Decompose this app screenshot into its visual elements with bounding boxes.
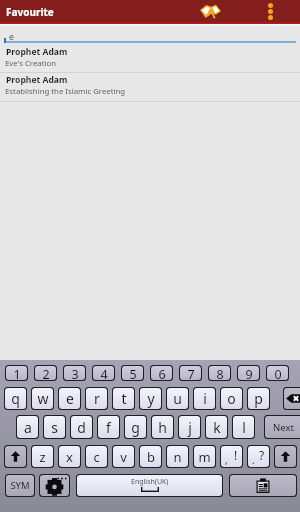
button[interactable]: n xyxy=(167,446,188,467)
staticText: Next xyxy=(273,421,294,434)
button[interactable]: Shift xyxy=(275,446,296,467)
button[interactable]: o xyxy=(221,388,242,409)
staticText: 8 xyxy=(216,366,224,380)
staticText: ? xyxy=(259,447,265,463)
button[interactable]: Prophet Adam xyxy=(0,73,300,102)
staticText: j xyxy=(188,418,192,437)
button[interactable]: 7 xyxy=(180,366,201,380)
staticText: Establishing the Islamic Greeting xyxy=(5,86,126,97)
button[interactable]: r xyxy=(86,388,107,409)
button[interactable]: Prophet Adam xyxy=(0,45,300,73)
button[interactable]: z xyxy=(32,446,53,467)
staticText: 0 xyxy=(274,366,282,380)
button[interactable]: e xyxy=(59,388,80,409)
button[interactable]: 3 xyxy=(64,366,85,380)
button[interactable]: u xyxy=(167,388,188,409)
staticText: English(UK) xyxy=(131,477,169,487)
button[interactable]: Open book xyxy=(193,0,227,23)
staticText: i xyxy=(203,389,207,408)
staticText: 9 xyxy=(245,366,253,380)
button[interactable]: 2 xyxy=(35,366,56,380)
staticText: Prophet Adam xyxy=(6,74,68,86)
button[interactable]: m xyxy=(194,446,215,467)
staticText: v xyxy=(120,448,127,466)
staticText: m xyxy=(198,448,211,466)
staticText: t xyxy=(121,389,127,408)
button[interactable]: d xyxy=(71,416,92,438)
staticText: 2 xyxy=(42,366,50,380)
button[interactable]: 1 xyxy=(6,366,27,380)
staticText: , xyxy=(225,453,228,467)
staticText: k xyxy=(213,418,221,437)
staticText: z xyxy=(39,448,46,466)
staticText: e xyxy=(9,30,15,42)
staticText: r xyxy=(94,389,100,408)
button[interactable]: j xyxy=(179,416,200,438)
staticText: SYM xyxy=(10,479,30,492)
button[interactable]: t xyxy=(113,388,134,409)
staticText: 6 xyxy=(158,366,166,380)
button[interactable]: 0 xyxy=(267,366,288,380)
button[interactable]: f xyxy=(98,416,119,438)
staticText: 1 xyxy=(13,366,21,380)
staticText: f xyxy=(106,418,111,437)
staticText: p xyxy=(254,389,263,408)
button[interactable]: 4 xyxy=(93,366,114,380)
button[interactable]: a xyxy=(17,416,38,438)
button[interactable]: Backspace xyxy=(284,388,300,409)
button[interactable]: v xyxy=(113,446,134,467)
button[interactable]: l xyxy=(233,416,254,438)
button[interactable]: k xyxy=(206,416,227,438)
button[interactable]: 6 xyxy=(151,366,172,380)
button[interactable]: q xyxy=(5,388,26,409)
staticText: 4 xyxy=(100,366,108,380)
staticText: l xyxy=(242,418,246,437)
button[interactable]: ? xyxy=(248,446,269,467)
staticText: d xyxy=(77,418,86,437)
staticText: g xyxy=(131,418,140,437)
button[interactable]: Keyboard settings xyxy=(40,475,69,496)
button[interactable]: SYM xyxy=(6,475,34,496)
button[interactable]: More options xyxy=(256,0,284,23)
staticText: 5 xyxy=(129,366,137,380)
staticText: u xyxy=(173,389,182,408)
button[interactable]: 5 xyxy=(122,366,143,380)
staticText: 7 xyxy=(187,366,195,380)
staticText: s xyxy=(51,418,58,437)
staticText: x xyxy=(66,448,73,466)
button[interactable]: 8 xyxy=(209,366,230,380)
staticText: 3 xyxy=(71,366,79,380)
button[interactable]: Next xyxy=(265,416,300,438)
button[interactable]: p xyxy=(248,388,269,409)
button[interactable]: ! xyxy=(221,446,242,467)
button[interactable]: w xyxy=(32,388,53,409)
button[interactable]: Clipboard xyxy=(230,475,296,496)
button[interactable]: h xyxy=(152,416,173,438)
button[interactable]: x xyxy=(59,446,80,467)
staticText: a xyxy=(24,418,32,437)
button[interactable]: i xyxy=(194,388,215,409)
staticText: w xyxy=(37,389,49,408)
button[interactable]: g xyxy=(125,416,146,438)
button[interactable]: e xyxy=(0,26,300,45)
staticText: n xyxy=(173,448,182,466)
button[interactable]: 9 xyxy=(238,366,259,380)
button[interactable]: Space xyxy=(77,475,222,496)
staticText: ! xyxy=(234,447,238,463)
staticText: o xyxy=(227,389,236,408)
staticText: Favourite xyxy=(6,5,54,19)
staticText: h xyxy=(158,418,167,437)
staticText: Eve's Creation xyxy=(5,58,57,69)
staticText: . xyxy=(252,453,255,467)
button[interactable]: y xyxy=(140,388,161,409)
button[interactable]: c xyxy=(86,446,107,467)
staticText: e xyxy=(66,389,74,408)
button[interactable]: s xyxy=(44,416,65,438)
staticText: q xyxy=(11,389,20,408)
staticText: y xyxy=(147,389,155,408)
staticText: c xyxy=(93,448,100,466)
staticText: Prophet Adam xyxy=(6,46,68,58)
button[interactable]: Shift xyxy=(5,446,26,467)
button[interactable]: b xyxy=(140,446,161,467)
staticText: b xyxy=(147,448,155,466)
